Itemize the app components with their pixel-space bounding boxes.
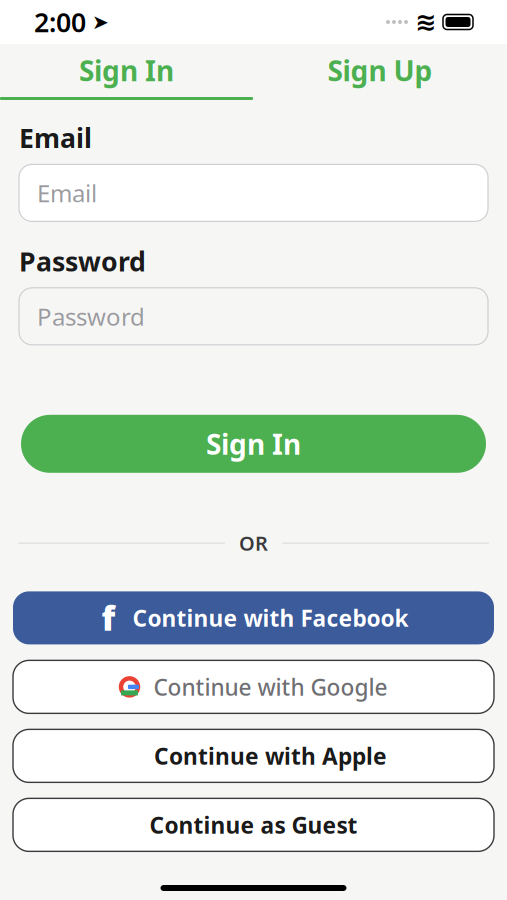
staticText: Sign Up <box>327 52 432 89</box>
staticText: Continue with Google <box>153 672 387 702</box>
staticText: f <box>101 596 115 640</box>
button[interactable]: Sign In <box>0 44 253 100</box>
staticText: Continue as Guest <box>149 810 357 840</box>
staticText: OR <box>239 530 268 556</box>
staticText: 2:00 <box>34 4 86 40</box>
button[interactable]: Sign Up <box>253 44 507 100</box>
button[interactable]: Sign In <box>21 415 486 473</box>
staticText: ➤ <box>92 11 109 33</box>
button[interactable] <box>13 729 494 782</box>
staticText: Password <box>37 300 145 332</box>
staticText: Continue with Apple <box>154 741 387 771</box>
staticText: Email <box>19 120 92 155</box>
button[interactable]: Continue as Guest <box>13 798 494 851</box>
button[interactable]: Continue with Google <box>13 660 494 713</box>
staticText: Email <box>37 177 97 209</box>
staticText: Continue with Facebook <box>132 603 408 633</box>
staticText: Sign In <box>79 52 174 89</box>
staticText: Password <box>19 243 146 279</box>
staticText: Sign In <box>206 425 301 462</box>
staticText: ≋ <box>415 8 436 36</box>
button[interactable]: f <box>13 591 494 644</box>
